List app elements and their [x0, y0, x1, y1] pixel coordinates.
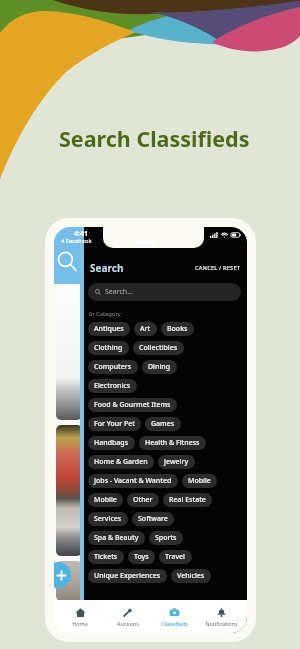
staticText: Books: [167, 324, 188, 334]
button[interactable]: Jobs - Vacant & Wanted: [88, 474, 178, 488]
staticText: Classifieds: [161, 620, 188, 627]
staticText: Search...: [105, 287, 133, 297]
staticText: Art: [140, 324, 151, 334]
button[interactable]: Vehicles: [171, 569, 211, 583]
staticText: 4:41: [74, 229, 88, 239]
button[interactable]: Electronics: [88, 379, 137, 393]
button[interactable]: Travel: [159, 550, 192, 564]
staticText: Antiques: [94, 324, 124, 334]
staticText: Toys: [134, 552, 149, 562]
staticText: Jobs - Vacant & Wanted: [94, 476, 172, 486]
staticText: Notifications: [205, 620, 238, 627]
staticText: Games: [151, 419, 175, 429]
button[interactable]: Art: [134, 322, 157, 336]
button[interactable]: Auctions: [104, 600, 151, 633]
staticText: Spa & Beauty: [94, 533, 139, 543]
staticText: Handbags: [94, 438, 129, 448]
staticText: Home & Garden: [94, 457, 148, 467]
button[interactable]: Jewelry: [158, 455, 195, 469]
button[interactable]: Mobile: [182, 474, 217, 488]
staticText: Food & Gourmet Items: [94, 400, 171, 410]
staticText: Auctions: [117, 620, 139, 627]
staticText: Unique Experiences: [94, 571, 161, 581]
button[interactable]: Spa & Beauty: [88, 531, 145, 545]
staticText: Mobile: [94, 495, 117, 505]
button[interactable]: Mobile: [88, 493, 123, 507]
staticText: In Category: [89, 310, 121, 318]
staticText: Vehicles: [177, 571, 205, 581]
button[interactable]: Services: [88, 512, 128, 526]
button[interactable]: Handbags: [88, 436, 135, 450]
staticText: For Your Pet: [94, 419, 135, 429]
staticText: Home: [72, 620, 88, 627]
button[interactable]: Home: [56, 600, 104, 633]
button[interactable]: Antiques: [88, 322, 130, 336]
button[interactable]: For Your Pet: [88, 417, 141, 431]
button[interactable]: Collectibles: [133, 341, 184, 355]
staticText: Jewelry: [164, 457, 189, 467]
button[interactable]: Notifications: [198, 600, 245, 633]
staticText: Real Estate: [169, 495, 206, 505]
button[interactable]: Unique Experiences: [88, 569, 167, 583]
staticText: Tickets: [94, 552, 118, 562]
staticText: Other: [133, 495, 153, 505]
staticText: Collectibles: [139, 343, 178, 353]
button[interactable]: Food & Gourmet Items: [88, 398, 177, 412]
staticText: Health & Fitness: [145, 438, 200, 448]
button[interactable]: CANCEL / RESET: [195, 264, 241, 272]
button[interactable]: Tickets: [88, 550, 124, 564]
button[interactable]: Computers: [88, 360, 138, 374]
staticText: Services: [94, 514, 122, 524]
staticText: Software: [138, 514, 168, 524]
staticText: Facebook: [66, 237, 92, 245]
button[interactable]: Add listing: [54, 562, 71, 588]
button[interactable]: Software: [132, 512, 174, 526]
button[interactable]: Home & Garden: [88, 455, 154, 469]
button[interactable]: Classifieds: [151, 600, 198, 633]
staticText: Sports: [155, 533, 177, 543]
button[interactable]: Search: [90, 261, 124, 275]
staticText: Electronics: [94, 381, 131, 391]
staticText: Search Classifieds: [59, 124, 250, 153]
staticText: Computers: [94, 362, 132, 372]
button[interactable]: Books: [161, 322, 194, 336]
button[interactable]: Clothing: [88, 341, 129, 355]
button[interactable]: Dining: [142, 360, 177, 374]
staticText: Dining: [148, 362, 171, 372]
button[interactable]: Health & Fitness: [139, 436, 206, 450]
button[interactable]: Real Estate: [163, 493, 212, 507]
button[interactable]: Other: [127, 493, 159, 507]
staticText: Mobile: [188, 476, 211, 486]
staticText: Clothing: [94, 343, 123, 353]
button[interactable]: Games: [145, 417, 181, 431]
button[interactable]: Toys: [128, 550, 155, 564]
button[interactable]: Search...: [88, 283, 241, 301]
button[interactable]: Sports: [149, 531, 183, 545]
staticText: Travel: [165, 552, 186, 562]
